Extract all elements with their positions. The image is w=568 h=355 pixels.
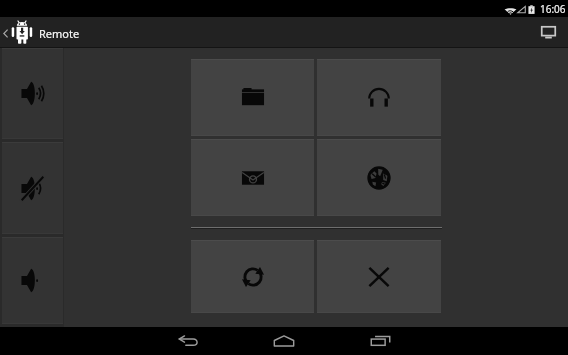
button[interactable]: Browser — [317, 139, 441, 216]
button[interactable]: Close — [317, 240, 441, 313]
button[interactable]: Files — [191, 59, 314, 136]
button[interactable]: Remote — [0, 21, 86, 45]
button[interactable]: Back — [140, 327, 236, 355]
button[interactable]: Mute — [2, 142, 63, 234]
button[interactable]: Cast to display — [530, 17, 568, 48]
button[interactable]: Recent apps — [332, 327, 428, 355]
button[interactable]: Volume down — [2, 237, 63, 324]
button[interactable]: Volume up — [2, 48, 63, 139]
staticText: Remote — [39, 26, 80, 41]
button[interactable]: Home — [236, 327, 332, 355]
button[interactable]: Headphones — [317, 59, 441, 136]
staticText: 16:06 — [540, 2, 566, 16]
button[interactable]: Mail — [191, 139, 314, 216]
button[interactable]: Refresh — [191, 240, 314, 313]
